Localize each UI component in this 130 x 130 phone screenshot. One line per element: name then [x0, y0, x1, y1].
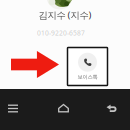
staticText: 김지수 (지수) — [38, 9, 91, 21]
button[interactable]: Back — [92, 88, 130, 129]
staticText: 010-9220-6587 — [37, 29, 85, 37]
button[interactable]: 보이스톡 — [67, 47, 107, 85]
button[interactable]: Home — [43, 88, 83, 129]
staticText: 보이스톡 — [77, 74, 97, 80]
button[interactable]: Menu — [0, 88, 33, 129]
